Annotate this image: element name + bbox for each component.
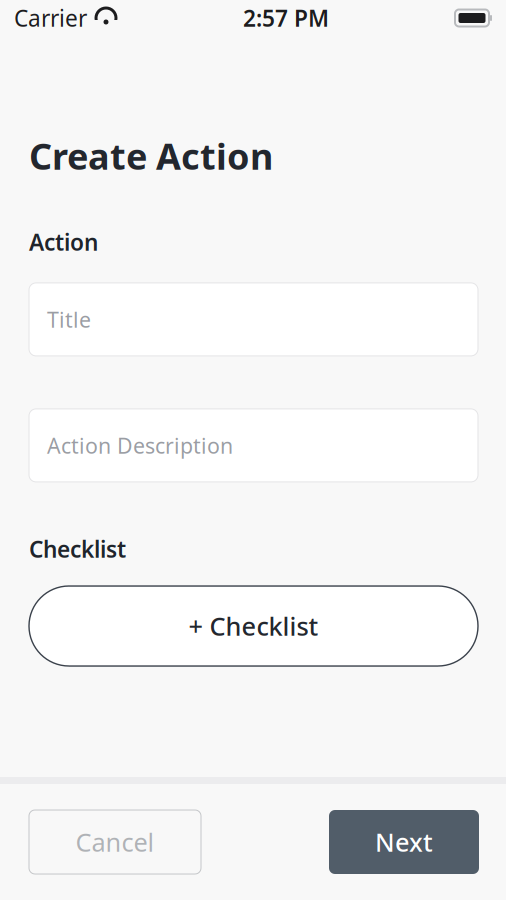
staticText: Carrier (14, 3, 87, 33)
staticText: Checklist (29, 534, 126, 564)
staticText: Next (375, 825, 433, 859)
staticText: Create Action (29, 132, 273, 180)
staticText: 2:57 PM (243, 3, 329, 33)
staticText: + Checklist (188, 609, 318, 643)
button[interactable]: + Checklist (29, 586, 478, 666)
staticText: Action (29, 227, 98, 257)
staticText: Title (47, 305, 91, 333)
staticText: Action Description (47, 431, 233, 459)
button[interactable]: Next (329, 810, 479, 874)
staticText: Cancel (75, 825, 154, 859)
button[interactable]: Cancel (29, 810, 201, 874)
